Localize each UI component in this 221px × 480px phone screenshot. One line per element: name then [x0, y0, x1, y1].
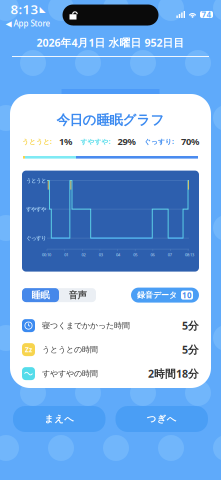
staticText: 70% — [181, 135, 199, 148]
staticText: 06 — [150, 252, 154, 257]
staticText: 08:13 — [185, 252, 194, 257]
staticText: ◀ App Store — [5, 18, 50, 29]
staticText: 5分 — [182, 318, 199, 333]
staticText: うとうと: — [22, 137, 52, 146]
button[interactable]: 睡眠 — [22, 288, 59, 302]
staticText: ◣ — [39, 5, 45, 14]
staticText: ぐっすり: — [144, 137, 174, 146]
staticText: 睡眠 — [31, 289, 49, 301]
staticText: 2時間18分 — [148, 366, 199, 381]
staticText: まえへ — [44, 413, 74, 425]
staticText: 00:10 — [42, 252, 51, 257]
staticText: 01 — [64, 252, 68, 257]
staticText: 29% — [117, 135, 135, 148]
button[interactable]: 寝つくまでかかった時間 — [10, 314, 211, 338]
staticText: 寝つくまでかかった時間 — [42, 321, 130, 330]
staticText: すやすや — [26, 206, 46, 212]
staticText: 04 — [116, 252, 120, 257]
staticText: 07 — [168, 252, 172, 257]
staticText: 録音データ — [137, 290, 177, 300]
staticText: 05 — [133, 252, 137, 257]
button[interactable]: 録音データ — [131, 288, 199, 303]
button[interactable]: すやすやの時間 — [10, 362, 211, 386]
staticText: うとうとの時間 — [42, 345, 98, 354]
staticText: 2026年4月1日 水曜日 952日目 — [36, 35, 184, 50]
staticText: つぎへ — [147, 413, 177, 425]
staticText: 03 — [99, 252, 103, 257]
button[interactable]: つぎへ — [115, 406, 208, 432]
staticText: Zz — [25, 345, 32, 354]
staticText: 74 — [201, 9, 211, 20]
staticText: 02 — [81, 252, 85, 257]
staticText: 今日の睡眠グラフ — [56, 112, 164, 128]
staticText: ぐっすり — [26, 235, 46, 241]
staticText: 1% — [59, 135, 72, 148]
staticText: 5分 — [182, 342, 199, 357]
staticText: 8:13 — [10, 0, 38, 18]
button[interactable]: Zz — [10, 338, 211, 362]
staticText: すやすや: — [80, 137, 110, 146]
button[interactable]: まえへ — [13, 406, 105, 432]
staticText: 音声 — [68, 289, 86, 301]
staticText: うとうと — [26, 177, 46, 184]
staticText: すやすやの時間 — [42, 369, 98, 378]
button[interactable]: 音声 — [59, 288, 96, 302]
staticText: 10 — [182, 290, 192, 300]
